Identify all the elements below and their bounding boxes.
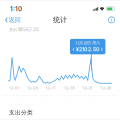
staticText: 12-16	[64, 86, 74, 90]
staticText: 12-01	[9, 86, 20, 90]
staticText: 12-21	[82, 86, 92, 90]
staticText: 12-26	[101, 86, 111, 90]
staticText: 12-11	[46, 86, 56, 90]
staticText: 支出分类	[9, 109, 33, 116]
staticText: 返回	[9, 16, 21, 24]
staticText: 支出 ¥8562.30	[9, 27, 39, 32]
button[interactable]: 返回	[2, 14, 23, 26]
staticText: 12月26日 周六	[75, 40, 100, 45]
staticText: 1:10	[10, 5, 22, 13]
staticText: ¥2102.50	[76, 46, 100, 53]
staticText: 统计	[53, 15, 67, 24]
staticText: 12-06	[27, 86, 38, 90]
button[interactable]: Info	[105, 14, 117, 26]
